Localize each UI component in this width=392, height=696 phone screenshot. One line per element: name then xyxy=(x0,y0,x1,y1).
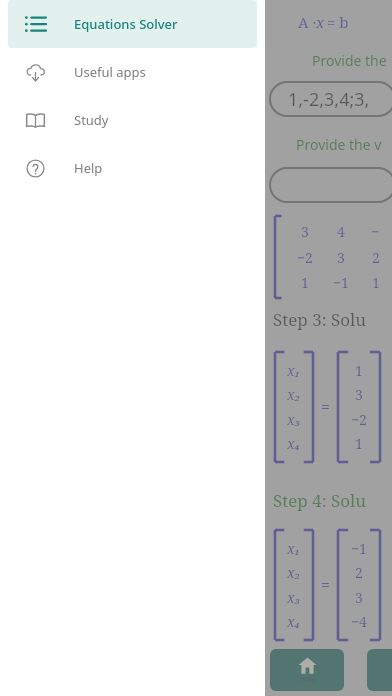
staticText: − xyxy=(371,222,380,241)
staticText: Study xyxy=(74,111,109,129)
staticText: x₃ xyxy=(287,588,301,607)
staticText: −2 xyxy=(297,248,313,267)
staticText: 2 xyxy=(372,248,380,267)
staticText: Step 4: Solu xyxy=(273,489,367,512)
staticText: 1 xyxy=(355,361,363,380)
button[interactable]: home xyxy=(270,649,344,691)
staticText: home xyxy=(297,675,317,685)
button[interactable]: Useful apps xyxy=(8,48,257,96)
staticText: Provide the v xyxy=(296,135,382,154)
staticText: x xyxy=(316,12,325,32)
staticText: 3 xyxy=(301,222,309,241)
staticText: 3 xyxy=(355,385,363,404)
button[interactable]: Study xyxy=(8,96,257,144)
staticText: −1 xyxy=(333,273,349,292)
staticText: x₁ xyxy=(287,539,301,558)
button[interactable]: Next xyxy=(367,649,392,691)
staticText: = xyxy=(321,396,330,418)
staticText: Useful apps xyxy=(74,63,146,81)
other: Help xyxy=(25,158,46,179)
staticText: = xyxy=(321,574,330,596)
staticText: −2 xyxy=(351,410,367,429)
staticText: 1 xyxy=(301,273,309,292)
staticText: 1,-2,3,4;3, xyxy=(288,87,370,112)
other: Useful apps xyxy=(25,62,46,83)
staticText: = b xyxy=(323,12,349,32)
staticText: Help xyxy=(74,159,103,177)
staticText: −4 xyxy=(351,612,367,631)
other: Study xyxy=(25,110,46,131)
staticText: 1 xyxy=(355,434,363,453)
staticText: −1 xyxy=(351,539,367,558)
staticText: 2 xyxy=(355,563,363,582)
staticText: x₂ xyxy=(287,563,301,582)
staticText: Equations Solver xyxy=(74,15,178,33)
staticText: Step 3: Solu xyxy=(273,308,367,331)
staticText: 3 xyxy=(355,588,363,607)
staticText: x₄ xyxy=(287,612,301,631)
staticText: Provide the xyxy=(312,51,387,70)
button[interactable]: Equations Solver xyxy=(8,0,257,48)
staticText: A · xyxy=(298,12,321,32)
button[interactable]: Help xyxy=(8,144,257,192)
staticText: x₄ xyxy=(287,434,301,453)
staticText: x₃ xyxy=(287,410,301,429)
other: Equations Solver xyxy=(25,14,46,35)
staticText: x₁ xyxy=(287,361,301,380)
staticText: 3 xyxy=(337,248,345,267)
button[interactable]: 1,-2,3,4;3, xyxy=(270,82,392,116)
staticText: x₂ xyxy=(287,385,301,404)
staticText: 4 xyxy=(337,222,345,241)
staticText: 1 xyxy=(372,273,380,292)
